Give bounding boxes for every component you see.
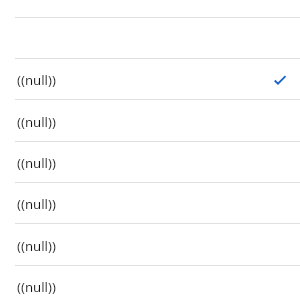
staticText: ((null)): [17, 154, 288, 172]
staticText: ((null)): [17, 71, 272, 89]
other: Selected: [272, 72, 288, 88]
staticText: ((null)): [17, 278, 288, 296]
button[interactable]: [0, 0, 300, 18]
staticText: ((null)): [17, 237, 288, 255]
button[interactable]: ((null)): [0, 59, 300, 100]
button[interactable]: ((null)): [0, 225, 300, 266]
button[interactable]: ((null)): [0, 266, 300, 300]
staticText: ((null)): [17, 195, 288, 213]
button[interactable]: ((null)): [0, 183, 300, 224]
staticText: ((null)): [17, 113, 288, 131]
button[interactable]: ((null)): [0, 142, 300, 183]
button[interactable]: ((null)): [0, 101, 300, 142]
button[interactable]: [0, 18, 300, 59]
